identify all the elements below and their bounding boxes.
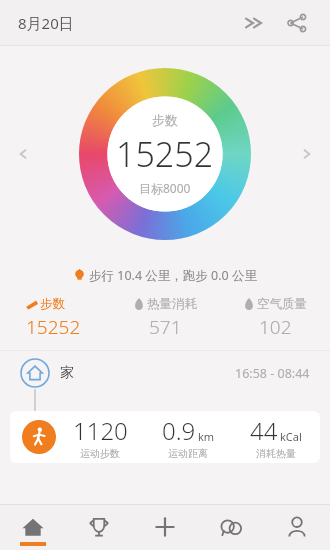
staticText: 消耗热量 (256, 447, 296, 460)
button[interactable]: Home (0, 504, 66, 550)
staticText: 步数 (152, 112, 178, 128)
button[interactable]: Achievements (66, 504, 132, 550)
button[interactable]: 空气质量 (220, 296, 330, 340)
button[interactable]: Add (132, 504, 198, 550)
button[interactable]: Share (278, 4, 316, 42)
staticText: 目标8000 (139, 180, 191, 196)
staticText: 热量消耗 (147, 296, 197, 312)
button[interactable]: Next day (292, 139, 322, 169)
staticText: 15252 (26, 314, 81, 340)
staticText: 0.9 (162, 414, 196, 447)
staticText: kCal (280, 429, 302, 444)
staticText: 1120 (73, 414, 128, 447)
button[interactable]: Previous day (8, 139, 38, 169)
staticText: 运动距离 (168, 447, 208, 460)
staticText: 步行 10.4 公里，跑步 0.0 公里 (89, 267, 257, 284)
button[interactable]: Messages (198, 504, 264, 550)
staticText: 运动步数 (80, 447, 120, 460)
button[interactable]: 步数 (0, 296, 110, 340)
staticText: 步数 (40, 296, 65, 312)
staticText: 8月20日 (18, 13, 74, 33)
staticText: 571 (149, 314, 182, 340)
button[interactable]: 热量消耗 (110, 296, 220, 340)
button[interactable]: Next (234, 4, 272, 42)
staticText: 空气质量 (257, 296, 307, 312)
staticText: km (198, 429, 215, 444)
button[interactable]: 家 (0, 351, 330, 395)
button[interactable]: Profile (264, 504, 330, 550)
staticText: 102 (259, 314, 292, 340)
staticText: 家 (60, 364, 74, 382)
button[interactable]: 1120 (10, 411, 320, 463)
staticText: 16:58 - 08:44 (235, 365, 310, 382)
staticText: 44 (250, 414, 278, 447)
staticText: 15252 (116, 131, 214, 177)
